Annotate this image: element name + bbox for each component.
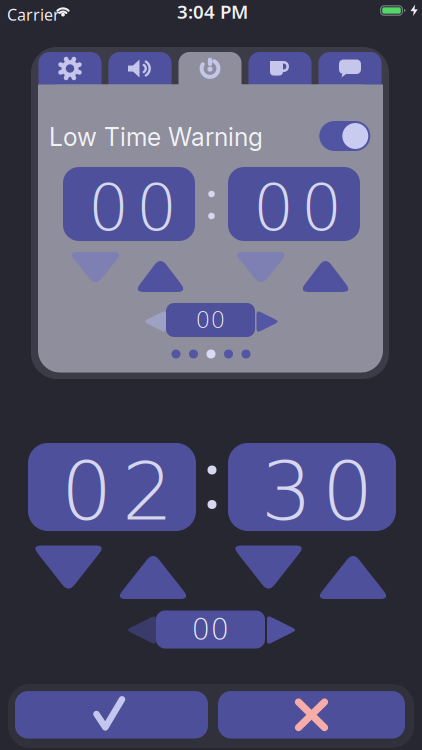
- button[interactable]: Decrease seconds: [231, 545, 305, 592]
- staticText: 00: [195, 306, 225, 334]
- button[interactable]: Previous value: [126, 615, 156, 645]
- button[interactable]: Cancel: [218, 691, 405, 738]
- button[interactable]: Previous value: [143, 310, 166, 333]
- staticText: 3:04 PM: [177, 0, 248, 24]
- button[interactable]: Confirm: [15, 691, 208, 738]
- button[interactable]: Sound: [108, 52, 171, 85]
- button[interactable]: Timer: [178, 52, 241, 85]
- button[interactable]: Decrease minutes: [31, 545, 105, 592]
- button[interactable]: Settings: [38, 52, 101, 85]
- button[interactable]: Decrease seconds: [233, 252, 288, 286]
- button[interactable]: Break: [248, 52, 311, 85]
- staticText: Carrier: [7, 4, 60, 25]
- button[interactable]: Next value: [256, 310, 279, 333]
- button[interactable]: Decrease minutes: [68, 252, 123, 286]
- button[interactable]: Next value: [267, 615, 297, 645]
- staticText: 02: [61, 444, 173, 538]
- staticText: Low Time Warning: [49, 122, 263, 152]
- button[interactable]: Chat: [318, 52, 381, 85]
- button[interactable]: Increase minutes: [134, 257, 187, 292]
- button[interactable]: Page 3 of 5: [172, 349, 250, 358]
- button[interactable]: Increase minutes: [116, 552, 190, 599]
- button[interactable]: Low Time Warning: [319, 121, 370, 151]
- staticText: 30: [261, 444, 373, 538]
- button[interactable]: Increase seconds: [299, 257, 352, 292]
- staticText: 00: [88, 170, 177, 245]
- button[interactable]: Increase seconds: [316, 552, 390, 599]
- staticText: 00: [191, 612, 229, 646]
- staticText: 00: [253, 170, 342, 245]
